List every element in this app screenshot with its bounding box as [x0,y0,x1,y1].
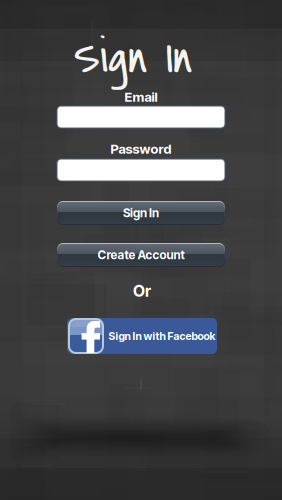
staticText: Or [133,281,151,301]
staticText: Sign In [123,206,159,220]
staticText: Password [110,141,171,157]
button[interactable]: Create Account [57,243,225,267]
staticText: Email [124,89,157,105]
staticText: Sign In [74,26,192,90]
staticText: Create Account [97,248,184,262]
button[interactable]: Sign In [57,201,225,225]
staticText: Sign In with Facebook [108,329,215,342]
button[interactable]: Sign In with Facebook [67,318,217,354]
